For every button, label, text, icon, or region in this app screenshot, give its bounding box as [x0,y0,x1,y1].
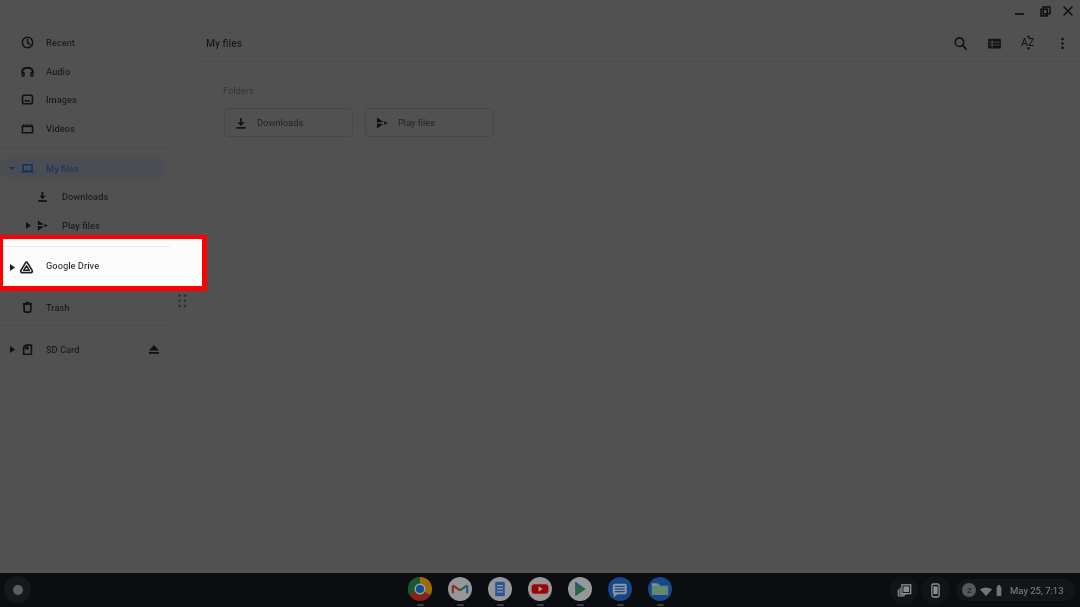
staticText: AZ [1021,36,1035,48]
staticText: Trash [46,302,70,313]
button[interactable]: Downloads [224,108,353,137]
button[interactable]: Status area [956,579,1075,601]
staticText: May 25, 7:13 [1010,585,1064,596]
button[interactable]: Minimize [1006,0,1032,22]
button[interactable]: Google Drive [3,239,202,286]
button[interactable]: Launcher [4,576,31,603]
staticText: SD Card [46,344,80,355]
staticText: Downloads [257,117,304,128]
staticText: My files [206,37,243,49]
staticText: Play files [398,117,435,128]
staticText: Recent [46,37,75,48]
button[interactable]: SD Card [0,335,172,363]
button[interactable]: Downloads [0,182,172,210]
staticText: Google Drive [46,260,100,271]
staticText: Audio [46,66,71,77]
button[interactable]: Images [0,85,172,113]
button[interactable]: Play Store [560,573,600,607]
button[interactable]: YouTube [520,573,560,607]
button[interactable]: Screen capture [890,576,918,604]
button[interactable]: Recent [0,28,172,56]
button[interactable]: My files [0,154,172,182]
staticText: Videos [46,123,75,134]
button[interactable]: Chrome [400,573,440,607]
button[interactable]: Files [640,573,680,607]
button[interactable]: Messages [600,573,640,607]
button[interactable]: Play files [0,211,172,239]
button[interactable]: More options [1045,25,1079,59]
button[interactable]: Close [1055,0,1080,22]
staticText: Play files [62,220,100,231]
button[interactable]: Phone hub [921,576,949,604]
staticText: My files [46,163,79,174]
button[interactable]: Trash [0,293,172,321]
staticText: 2 [967,586,972,595]
staticText: Downloads [62,191,109,202]
button[interactable]: Play files [365,108,494,137]
staticText: Images [46,94,77,105]
staticText: Folders [223,85,254,96]
button[interactable]: Search [943,25,977,59]
button[interactable]: Switch to list view [977,25,1011,59]
button[interactable]: Videos [0,114,172,142]
button[interactable]: Gmail [440,573,480,607]
button[interactable]: Docs [480,573,520,607]
button[interactable]: Sort A to Z [1011,25,1045,59]
button[interactable]: Audio [0,57,172,85]
button[interactable]: Maximize [1032,0,1058,22]
